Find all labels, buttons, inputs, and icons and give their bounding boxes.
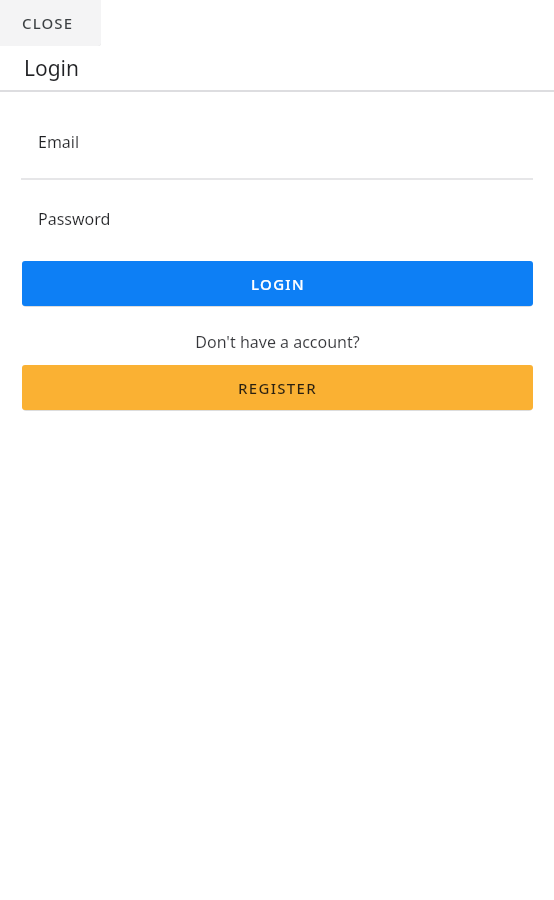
button[interactable]: Password [0, 199, 554, 239]
staticText: REGISTER [238, 378, 317, 398]
staticText: LOGIN [251, 274, 305, 294]
button[interactable]: LOGIN [22, 261, 533, 306]
button[interactable]: REGISTER [22, 365, 533, 410]
button[interactable]: CLOSE [0, 0, 101, 46]
button[interactable]: Email [0, 122, 554, 162]
staticText: Password [38, 208, 111, 230]
staticText: Login [24, 54, 80, 83]
staticText: CLOSE [22, 13, 74, 33]
staticText: Email [38, 131, 80, 153]
staticText: Don't have a account? [195, 331, 360, 353]
